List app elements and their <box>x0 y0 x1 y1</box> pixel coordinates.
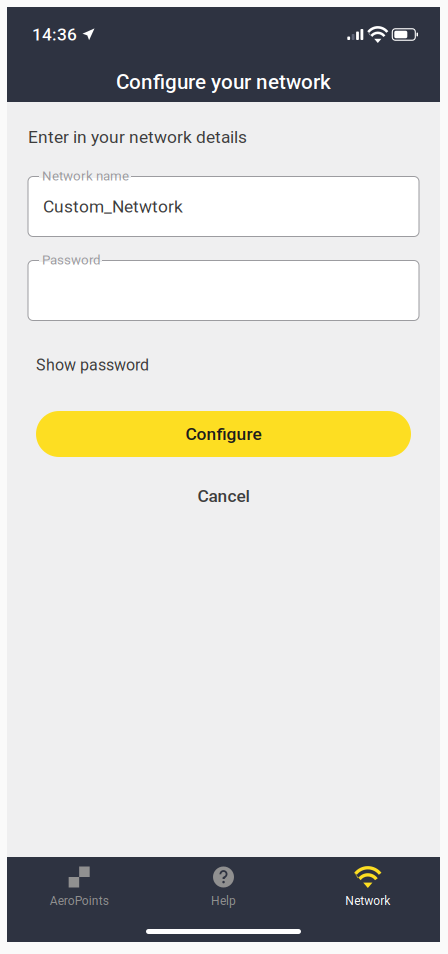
button[interactable]: Show password <box>7 355 440 375</box>
staticText: 14:36 <box>32 24 77 45</box>
staticText: Network <box>345 894 390 908</box>
staticText: Password <box>42 252 101 268</box>
staticText: Configure your network <box>116 70 331 94</box>
button[interactable]: AeroPoints <box>7 857 151 908</box>
button[interactable]: Cancel <box>7 483 440 509</box>
staticText: Configure <box>185 424 261 444</box>
staticText: AeroPoints <box>50 894 109 908</box>
button[interactable]: Network <box>296 857 440 908</box>
staticText: Help <box>211 894 236 908</box>
button[interactable]: Help <box>151 857 296 908</box>
staticText: Custom_Netwtork <box>43 196 183 217</box>
button[interactable]: Configure <box>7 411 440 457</box>
staticText: Enter in your network details <box>28 127 247 147</box>
staticText: Show password <box>36 356 149 374</box>
staticText: Cancel <box>197 486 249 506</box>
staticText: Network name <box>42 168 129 184</box>
